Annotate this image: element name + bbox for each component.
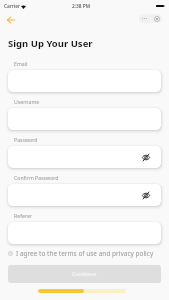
staticText: Email xyxy=(14,60,28,67)
staticText: 2:38 PM xyxy=(72,3,91,10)
staticText: Confirm Password xyxy=(14,174,59,181)
staticText: Sign Up Your User xyxy=(8,37,93,50)
staticText: Password xyxy=(14,136,38,143)
staticText: Referer xyxy=(14,212,32,219)
button[interactable]: Back xyxy=(4,13,17,26)
button[interactable]: Toggle password visibility xyxy=(140,152,151,163)
staticText: Carrier xyxy=(4,3,20,10)
staticText: Continue xyxy=(72,270,97,278)
button[interactable]: More options xyxy=(142,14,149,23)
button[interactable]: Close xyxy=(149,14,162,23)
button[interactable]: Toggle password visibility xyxy=(8,184,161,206)
button[interactable]: I agree to the terms of use and privacy … xyxy=(8,249,161,258)
staticText: I agree to the terms of use and privacy … xyxy=(16,249,154,258)
staticText: Username xyxy=(14,98,40,105)
button[interactable]: Toggle password visibility xyxy=(140,190,151,201)
button[interactable]: Toggle password visibility xyxy=(8,146,161,168)
